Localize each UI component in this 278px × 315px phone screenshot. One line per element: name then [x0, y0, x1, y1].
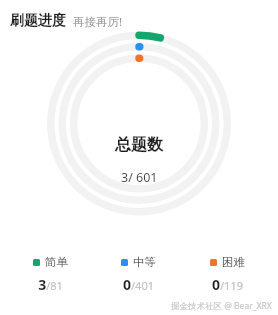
staticText: 掘金技术社区 @ Bear_XRX — [171, 300, 272, 312]
staticText: 困难 — [222, 255, 245, 269]
staticText: 简单 — [45, 255, 68, 269]
staticText: 0/119 — [212, 275, 243, 294]
button[interactable]: 刷题进度 — [10, 12, 123, 30]
staticText: 中等 — [133, 255, 156, 269]
button[interactable]: 简单 — [6, 255, 94, 294]
staticText: 3/ 601 — [121, 169, 158, 186]
button[interactable]: 中等 — [94, 255, 183, 294]
staticText: 0/401 — [123, 275, 154, 294]
button[interactable]: 困难 — [183, 255, 272, 294]
staticText: 总题数 — [115, 135, 163, 155]
staticText: 3/81 — [38, 275, 63, 294]
staticText: 再接再厉! — [73, 14, 123, 30]
staticText: 刷题进度 — [10, 12, 66, 30]
button[interactable]: 刷题进度环形图 — [46, 42, 232, 205]
